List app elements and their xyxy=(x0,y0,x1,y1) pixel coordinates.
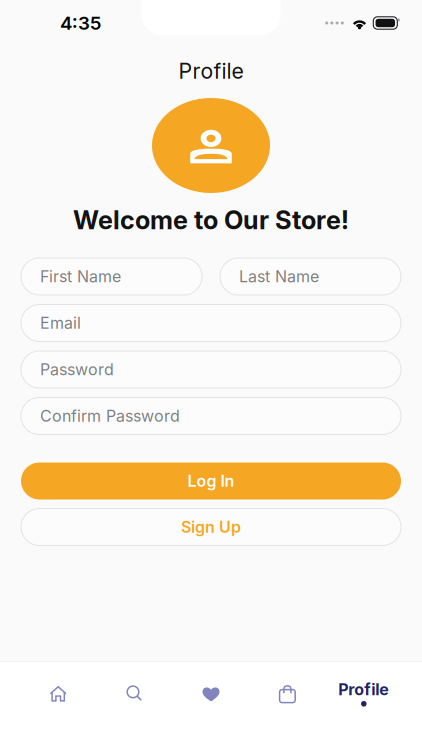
staticText: Profile xyxy=(178,58,243,84)
button[interactable]: Email xyxy=(21,304,401,341)
button[interactable]: Confirm Password xyxy=(21,397,401,434)
button[interactable]: Bag xyxy=(249,662,326,726)
staticText: Log In xyxy=(187,471,234,491)
button[interactable]: Log In xyxy=(21,462,401,499)
button[interactable]: First Name xyxy=(21,258,202,295)
staticText: Password xyxy=(40,360,114,379)
staticText: Profile xyxy=(338,680,389,699)
button[interactable]: Search xyxy=(96,662,173,726)
staticText: First Name xyxy=(40,267,121,286)
staticText: Sign Up xyxy=(181,517,241,537)
button[interactable]: Favorites xyxy=(173,662,249,726)
button[interactable]: Home xyxy=(20,662,96,726)
button[interactable]: Password xyxy=(21,351,401,388)
staticText: Last Name xyxy=(239,267,319,286)
staticText: Welcome to Our Store! xyxy=(73,205,349,235)
staticText: Email xyxy=(40,313,81,333)
staticText: 4:35 xyxy=(60,12,101,34)
staticText: Confirm Password xyxy=(40,406,180,426)
button[interactable]: Profile xyxy=(326,662,402,726)
button[interactable]: Sign Up xyxy=(21,508,401,545)
button[interactable]: Last Name xyxy=(220,258,401,295)
